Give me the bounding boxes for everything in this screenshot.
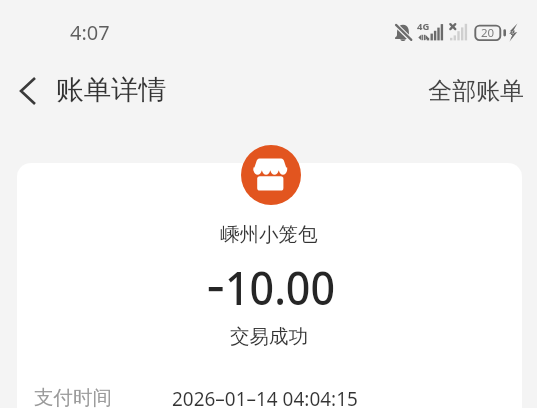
staticText: 10.00 — [225, 257, 336, 318]
staticText: 4:07 — [70, 19, 110, 46]
staticText: 4G — [417, 20, 430, 33]
button[interactable]: Back — [8, 70, 50, 112]
staticText: 全部账单 — [428, 76, 524, 106]
button[interactable]: 全部账单 — [420, 71, 532, 111]
staticText: 账单详情 — [56, 73, 166, 107]
staticText: 20 — [481, 25, 495, 41]
staticText: 交易成功 — [230, 324, 308, 349]
staticText: 2026–01–14 04:04:15 — [172, 385, 359, 408]
staticText: 嵊州小笼包 — [220, 222, 318, 247]
staticText: 支付时间 — [34, 385, 112, 408]
